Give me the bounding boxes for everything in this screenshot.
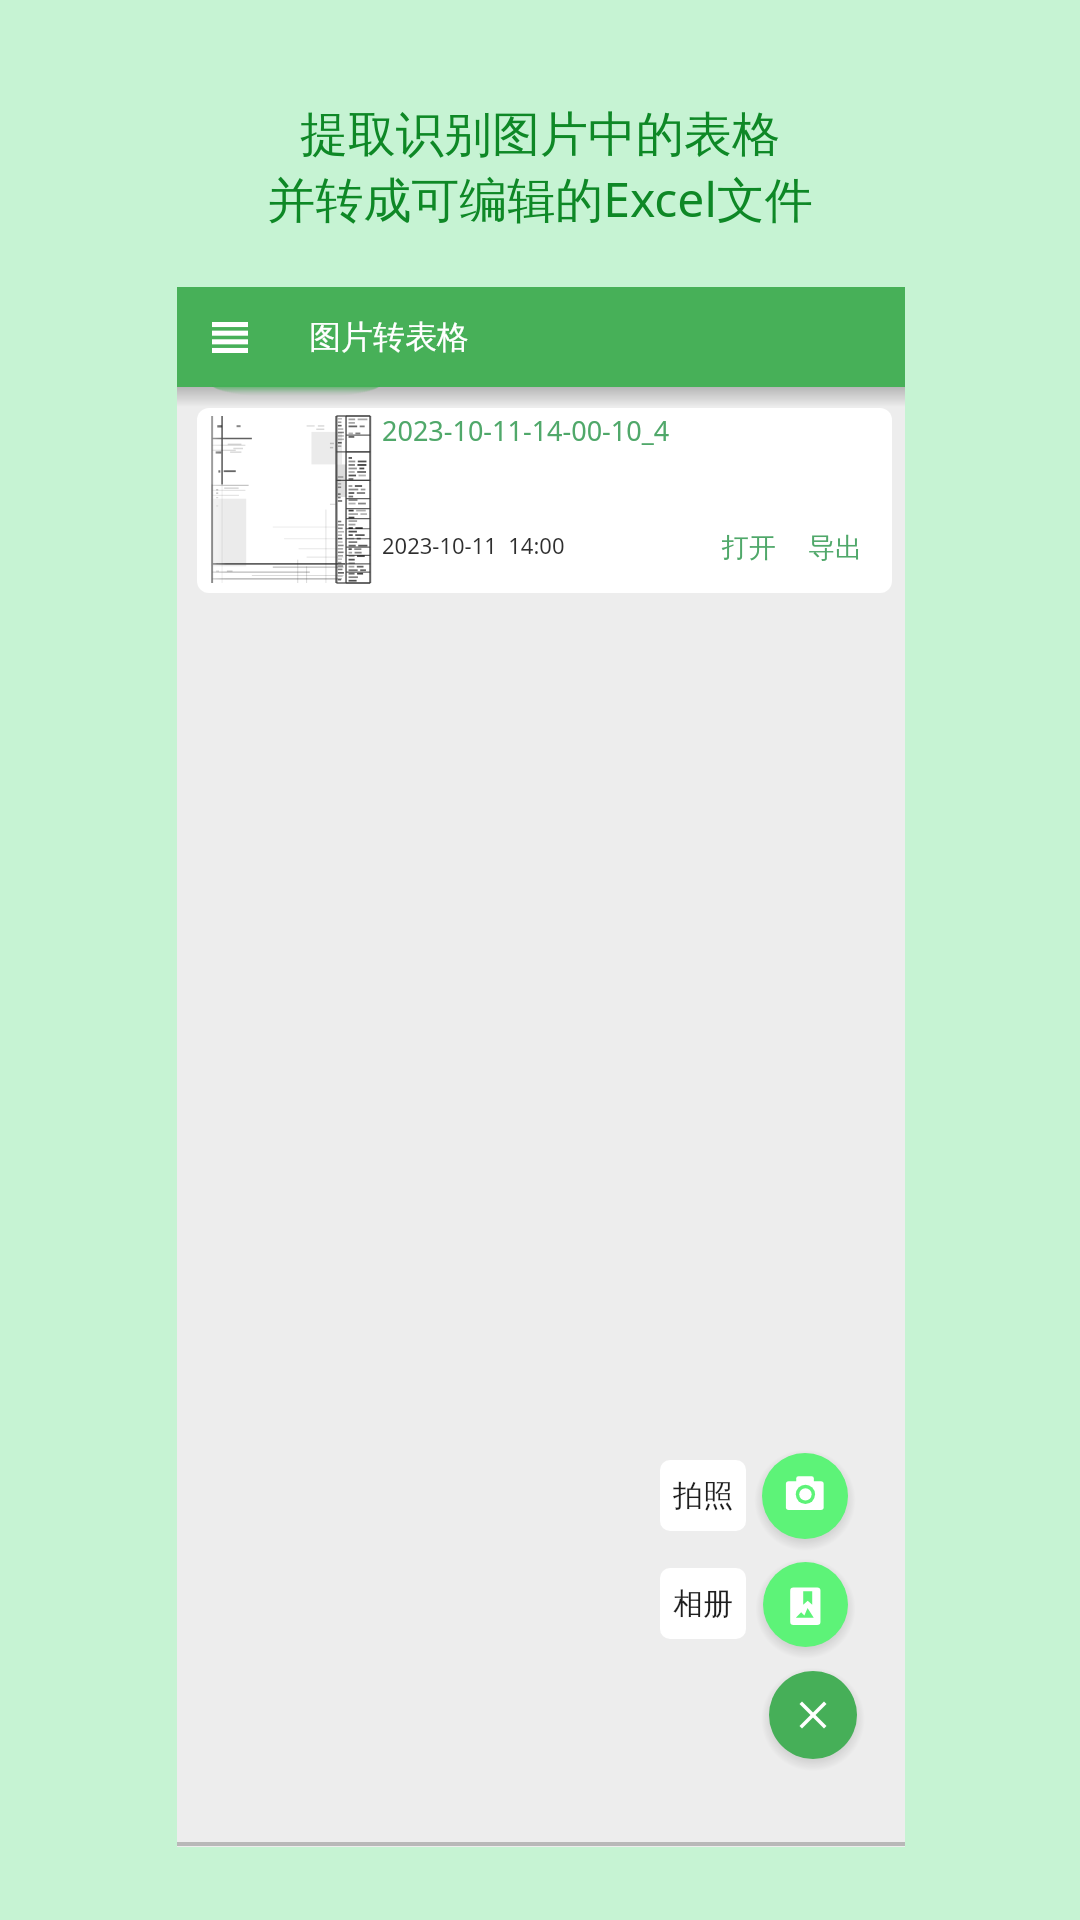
button[interactable]: Open gallery [763,1562,848,1647]
button[interactable]: 2023-10-11-14-00-10_4 [197,408,892,593]
button[interactable]: 拍照 [660,1460,746,1531]
button[interactable]: Close menu [769,1671,857,1759]
staticText: 2023-10-11-14-00-10_4 [382,412,670,449]
button[interactable]: Take photo [762,1453,848,1539]
staticText: 提取识别图片中的表格 [300,105,780,165]
staticText: 拍照 [673,1477,733,1515]
button[interactable]: 打开 [722,531,776,565]
staticText: 相册 [673,1585,733,1623]
button[interactable]: 相册 [660,1568,746,1639]
button[interactable]: Menu [201,308,259,366]
staticText: 并转成可编辑的Excel文件 [267,166,813,232]
staticText: 2023-10-11 14:00 [382,530,565,560]
staticText: 图片转表格 [309,317,469,357]
button[interactable]: 导出 [808,531,862,565]
